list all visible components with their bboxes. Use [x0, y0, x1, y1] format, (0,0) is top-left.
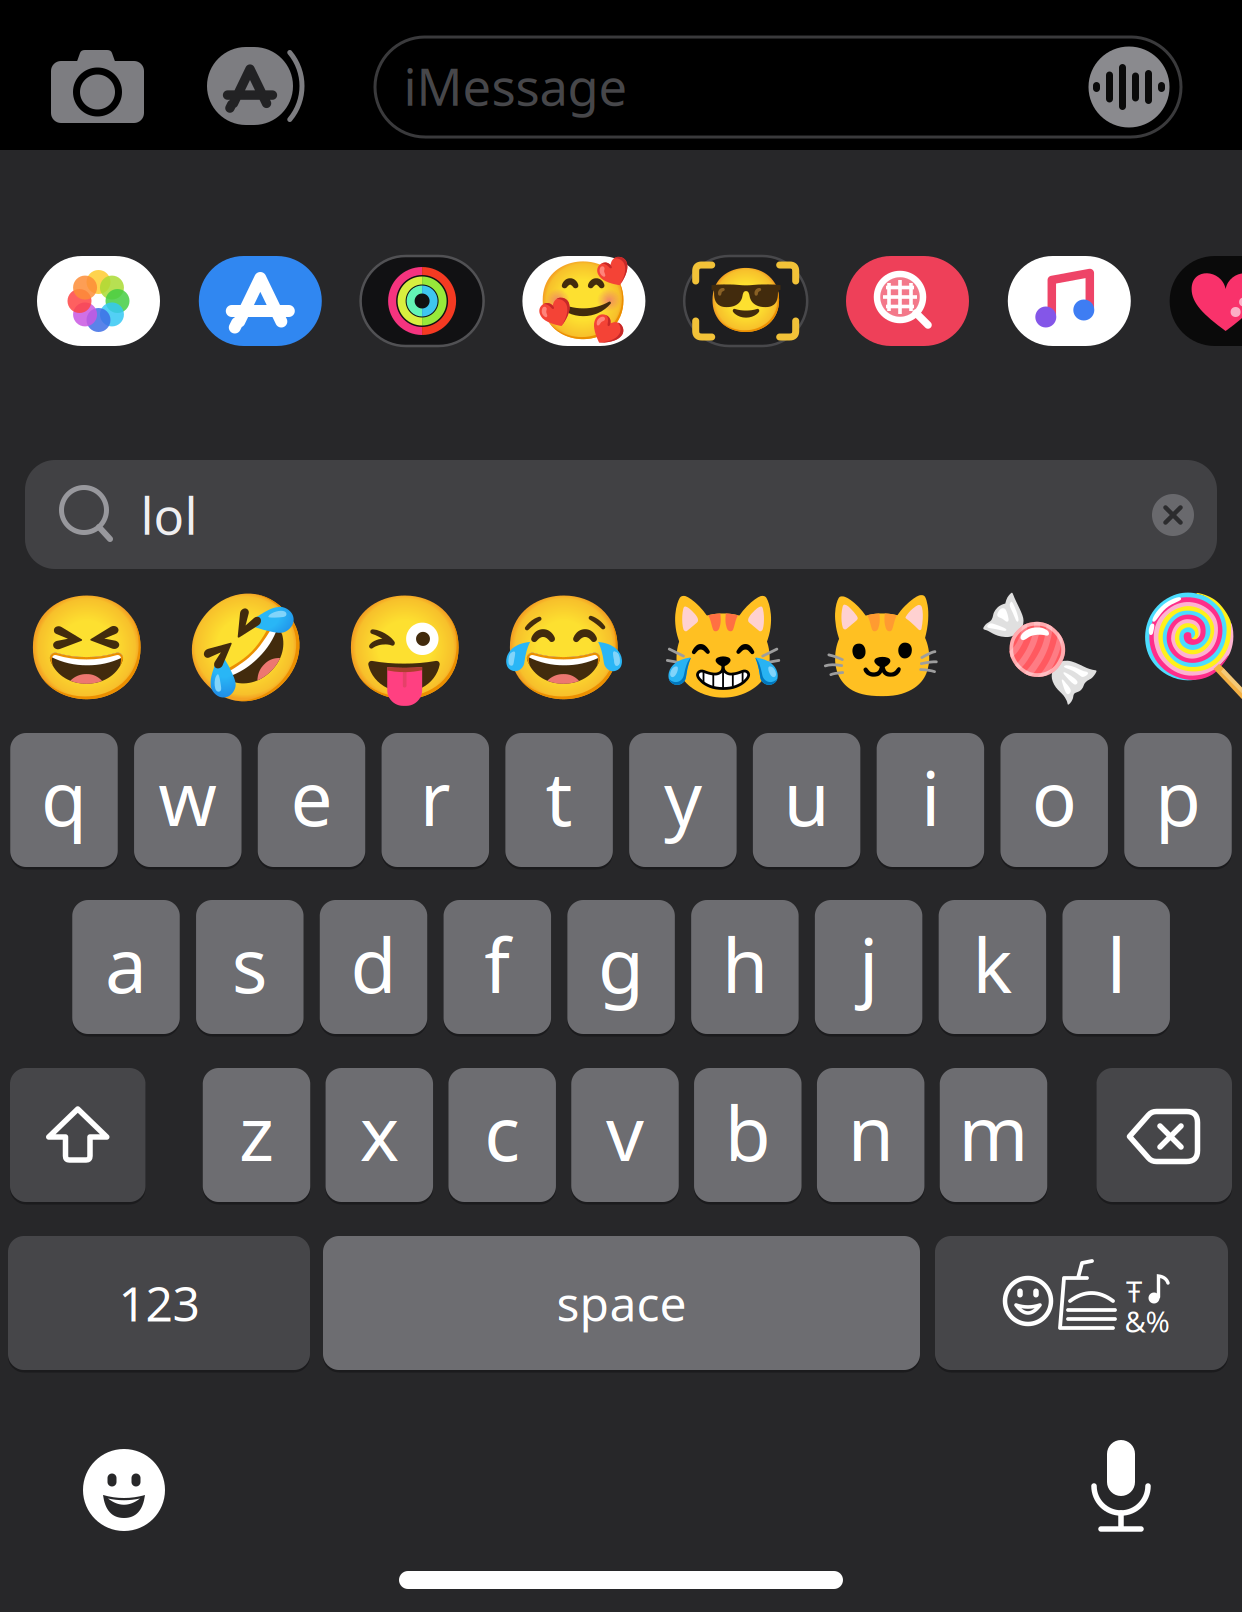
staticText: n — [848, 1082, 894, 1182]
staticText: r — [420, 747, 451, 847]
button[interactable]: 😹 — [663, 590, 783, 706]
staticText: i — [921, 747, 940, 847]
staticText: lol — [140, 481, 197, 549]
button[interactable]: Music — [1008, 256, 1131, 346]
button[interactable]: 🐱 — [821, 590, 941, 706]
button[interactable]: g — [567, 899, 675, 1035]
button[interactable]: space — [323, 1235, 920, 1371]
button[interactable]: j — [815, 899, 922, 1035]
button[interactable]: w — [134, 732, 242, 868]
staticText: 🤣 — [183, 590, 309, 706]
staticText: 😂 — [501, 590, 627, 706]
button[interactable]: 🍬 — [980, 590, 1100, 706]
staticText: t — [546, 747, 573, 847]
staticText: o — [1032, 747, 1077, 847]
staticText: q — [41, 747, 87, 847]
staticText: l — [1107, 914, 1126, 1014]
button[interactable]: h — [691, 899, 799, 1035]
staticText: s — [232, 914, 268, 1014]
button[interactable]: 🍭 — [1139, 590, 1242, 706]
staticText: 🥰 — [536, 258, 631, 344]
staticText: 😎 — [707, 265, 785, 337]
button[interactable]: s — [196, 899, 304, 1035]
button[interactable]: i — [877, 732, 984, 868]
button[interactable]: q — [10, 732, 118, 868]
button[interactable]: Clear search — [1152, 494, 1194, 536]
button[interactable]: a — [72, 899, 180, 1035]
staticText: z — [239, 1082, 274, 1182]
button[interactable]: x — [326, 1067, 433, 1203]
button[interactable]: #images — [846, 256, 969, 346]
button[interactable]: App Store — [199, 256, 322, 346]
staticText: v — [606, 1082, 644, 1182]
staticText: x — [360, 1082, 399, 1182]
staticText: 😹 — [660, 590, 786, 706]
staticText: space — [556, 1271, 686, 1335]
staticText: y — [664, 747, 702, 847]
button[interactable]: m — [940, 1067, 1047, 1203]
staticText: Ŧ — [1126, 1271, 1142, 1310]
staticText: p — [1155, 747, 1201, 847]
button[interactable]: Emoji — [83, 1449, 165, 1531]
button[interactable]: d — [320, 899, 427, 1035]
staticText: e — [290, 747, 332, 847]
staticText: iMessage — [403, 52, 627, 120]
button[interactable]: Activity — [361, 256, 484, 346]
staticText: 123 — [118, 1271, 199, 1335]
staticText: j — [859, 914, 878, 1014]
button[interactable]: Voice input — [1090, 1439, 1152, 1535]
staticText: m — [958, 1082, 1028, 1182]
staticText: 😆 — [24, 590, 150, 706]
staticText: 🍭 — [1136, 590, 1242, 706]
button[interactable]: v — [571, 1067, 679, 1203]
button[interactable]: u — [753, 732, 860, 868]
button[interactable]: Delete — [1096, 1067, 1232, 1203]
staticText: c — [484, 1082, 520, 1182]
button[interactable]: t — [505, 732, 613, 868]
button[interactable]: y — [629, 732, 737, 868]
staticText: &% — [1124, 1301, 1169, 1340]
staticText: 🐱 — [818, 590, 944, 706]
button[interactable]: 123 — [8, 1235, 310, 1371]
button[interactable]: Photos — [37, 256, 160, 346]
staticText: k — [972, 914, 1012, 1014]
button[interactable]: c — [448, 1067, 556, 1203]
staticText: w — [158, 747, 217, 847]
staticText: f — [484, 914, 510, 1014]
button[interactable]: e — [258, 732, 365, 868]
button[interactable]: Emoji categories — [935, 1235, 1228, 1371]
button[interactable]: Memoji Stickers — [522, 256, 645, 346]
button[interactable]: Shift — [10, 1067, 145, 1203]
button[interactable]: Camera — [47, 47, 148, 127]
button[interactable]: Memoji — [684, 256, 807, 346]
button[interactable]: o — [1000, 732, 1108, 868]
staticText: b — [725, 1082, 771, 1182]
staticText: d — [350, 914, 396, 1014]
staticText: 🍬 — [977, 590, 1103, 706]
button[interactable]: b — [694, 1067, 801, 1203]
button[interactable]: iMessage apps — [207, 43, 313, 129]
button[interactable]: r — [382, 732, 489, 868]
button[interactable]: Digital Touch — [1170, 256, 1242, 346]
button[interactable]: n — [817, 1067, 924, 1203]
button[interactable]: f — [444, 899, 551, 1035]
button[interactable]: p — [1124, 732, 1232, 868]
staticText: u — [784, 747, 830, 847]
button[interactable]: l — [1062, 899, 1170, 1035]
button[interactable]: iMessage text field — [375, 37, 1181, 137]
staticText: h — [722, 914, 768, 1014]
button[interactable]: Dictation — [1088, 46, 1169, 127]
button[interactable]: z — [203, 1067, 310, 1203]
button[interactable]: 😜 — [345, 590, 465, 706]
button[interactable]: 😆 — [27, 590, 147, 706]
staticText: 😜 — [342, 590, 468, 706]
staticText: a — [105, 914, 147, 1014]
button[interactable]: Search emoji — [25, 460, 1217, 569]
button[interactable]: k — [939, 899, 1046, 1035]
button[interactable]: 🤣 — [186, 590, 306, 706]
staticText: g — [598, 914, 644, 1014]
button[interactable]: 😂 — [504, 590, 624, 706]
